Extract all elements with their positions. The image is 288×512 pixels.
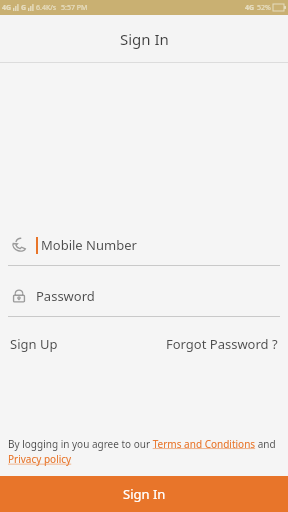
other: Password: [11, 288, 27, 304]
staticText: 4G: [245, 3, 255, 13]
staticText: Sign Up: [10, 335, 58, 353]
staticText: 4G: [2, 3, 12, 13]
staticText: 52%: [257, 3, 271, 13]
other: Phone: [11, 237, 27, 253]
staticText: 6.4K/s: [36, 3, 57, 13]
staticText: Forgot Password ?: [166, 335, 278, 353]
staticText: By logging in you agree to our Terms and…: [8, 437, 280, 466]
button[interactable]: Password: [0, 283, 288, 309]
button[interactable]: Sign Up: [8, 329, 60, 359]
staticText: Sign In: [120, 29, 169, 49]
staticText: Sign In: [123, 485, 166, 503]
staticText: 5:57 PM: [61, 3, 88, 13]
staticText: Mobile Number: [41, 236, 137, 254]
button[interactable]: Forgot Password ?: [164, 329, 280, 359]
staticText: Password: [36, 287, 95, 305]
button[interactable]: Sign In: [0, 476, 288, 512]
staticText: G: [21, 3, 27, 13]
button[interactable]: By logging in you agree to our Terms and…: [0, 437, 288, 466]
button[interactable]: Phone: [0, 232, 288, 258]
